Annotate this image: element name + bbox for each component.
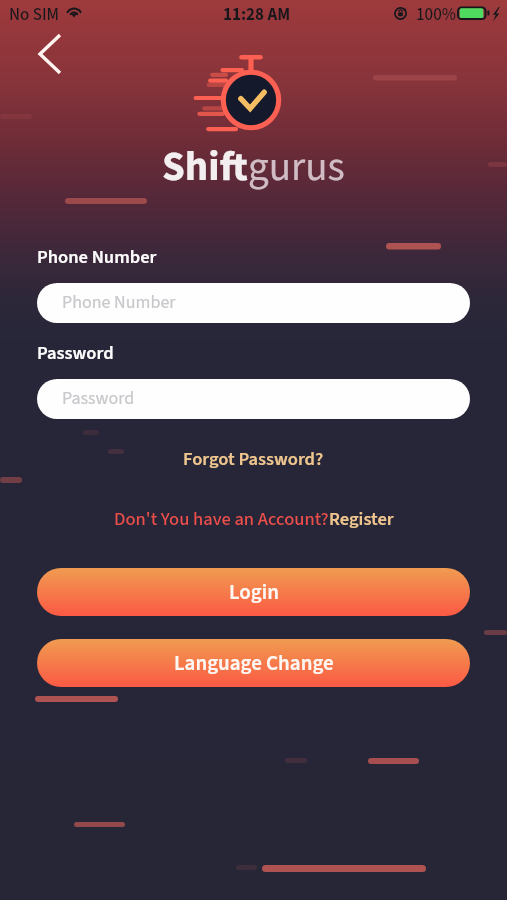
staticText: Shift	[162, 138, 248, 196]
staticText: Phone Number	[37, 244, 157, 270]
button[interactable]: Back	[26, 28, 74, 76]
button[interactable]: Don't You have an Account?	[114, 506, 394, 532]
button[interactable]: Login	[37, 568, 470, 616]
staticText: gurus	[248, 138, 345, 196]
staticText: Register	[329, 506, 394, 532]
staticText: Don't You have an Account?	[114, 506, 329, 532]
staticText: 100%	[416, 3, 456, 27]
staticText: 11:28 AM	[223, 3, 291, 27]
staticText: Language Change	[174, 648, 334, 678]
staticText: Password	[37, 340, 114, 366]
button[interactable]: Password	[37, 379, 470, 419]
button[interactable]: Language Change	[37, 639, 470, 687]
button[interactable]: Forgot Password?	[183, 446, 324, 472]
button[interactable]: Phone Number	[37, 283, 470, 323]
staticText: Forgot Password?	[183, 446, 324, 472]
staticText: Login	[229, 577, 279, 607]
staticText: No SIM	[9, 3, 60, 27]
staticText: Password	[62, 386, 135, 412]
staticText: Phone Number	[62, 290, 176, 316]
